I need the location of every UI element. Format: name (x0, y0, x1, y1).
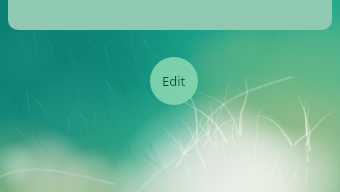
button[interactable]: Edit (150, 57, 198, 105)
staticText: Edit (162, 72, 186, 90)
button[interactable] (8, 0, 332, 30)
